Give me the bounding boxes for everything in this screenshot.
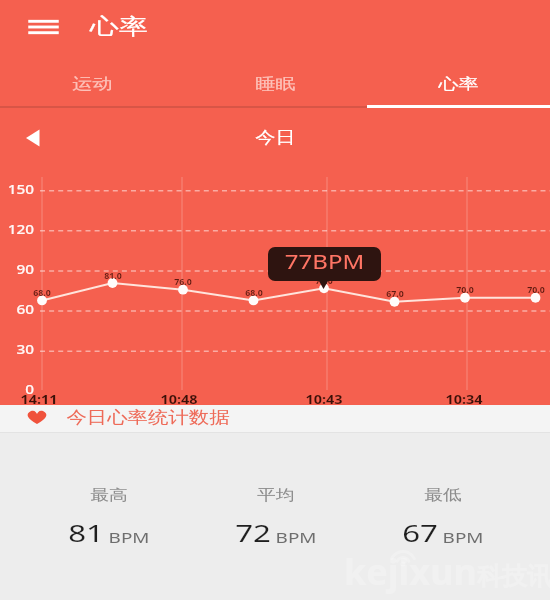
- staticText: BPM: [275, 527, 317, 547]
- staticText: 最低: [424, 486, 462, 505]
- staticText: 10:48: [143, 391, 215, 407]
- button[interactable]: 最低: [359, 486, 526, 549]
- staticText: BPM: [442, 527, 484, 547]
- staticText: 最高: [90, 486, 128, 505]
- staticText: 70.0: [448, 284, 481, 295]
- staticText: 81: [68, 516, 104, 549]
- staticText: 67.0: [378, 288, 411, 299]
- staticText: 90: [0, 260, 34, 278]
- button[interactable]: Open navigation menu: [21, 12, 66, 42]
- button[interactable]: 运动: [0, 57, 184, 108]
- staticText: 心率: [90, 13, 148, 41]
- staticText: 今日: [255, 127, 296, 148]
- staticText: 72: [235, 516, 271, 549]
- staticText: 77.0: [307, 275, 340, 286]
- button[interactable]: 今日心率统计数据: [0, 405, 550, 432]
- staticText: 76.0: [166, 276, 199, 287]
- staticText: 68.0: [25, 287, 58, 298]
- staticText: 67: [402, 516, 438, 549]
- staticText: 70.0: [519, 284, 550, 295]
- staticText: 14:11: [3, 391, 75, 407]
- staticText: 30: [0, 340, 34, 358]
- staticText: 77BPM: [284, 248, 365, 275]
- button[interactable]: 平均: [192, 486, 359, 549]
- staticText: 150: [0, 180, 34, 198]
- staticText: 平均: [257, 486, 295, 505]
- button[interactable]: 77BPM: [268, 247, 381, 281]
- staticText: 今日心率统计数据: [66, 407, 230, 428]
- button[interactable]: Previous day: [16, 121, 50, 155]
- staticText: 0: [0, 380, 34, 398]
- staticText: 10:34: [428, 391, 500, 407]
- staticText: 10:43: [288, 391, 360, 407]
- staticText: 60: [0, 300, 34, 318]
- staticText: 81.0: [96, 270, 129, 281]
- staticText: 运动: [72, 74, 113, 94]
- button[interactable]: 睡眠: [184, 57, 367, 108]
- staticText: BPM: [108, 527, 150, 547]
- button[interactable]: 最高: [25, 486, 192, 549]
- staticText: 睡眠: [255, 74, 296, 94]
- staticText: 68.0: [237, 287, 270, 298]
- staticText: 120: [0, 220, 34, 238]
- staticText: 心率: [438, 74, 479, 94]
- button[interactable]: 心率: [367, 57, 550, 108]
